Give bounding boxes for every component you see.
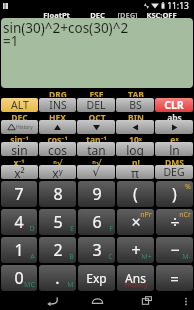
staticText: INS bbox=[49, 98, 67, 112]
button[interactable]: DEG bbox=[155, 165, 193, 179]
button[interactable]: tan bbox=[77, 142, 115, 156]
staticText: Exp bbox=[86, 270, 107, 286]
button[interactable]: History bbox=[1, 120, 38, 134]
staticText: F bbox=[109, 224, 113, 234]
staticText: ⁿ√ bbox=[92, 157, 102, 165]
button[interactable]: 5 bbox=[39, 209, 76, 235]
staticText: 3 bbox=[92, 239, 102, 261]
button[interactable]: x² bbox=[1, 165, 38, 179]
staticText: TAB bbox=[128, 89, 144, 97]
button[interactable]: 7 bbox=[1, 181, 37, 207]
staticText: History bbox=[124, 280, 148, 290]
staticText: log bbox=[126, 142, 144, 156]
button[interactable]: 1 bbox=[1, 237, 37, 263]
button[interactable]: cos bbox=[39, 142, 76, 156]
button[interactable]: Recent apps bbox=[136, 291, 158, 310]
staticText: A bbox=[30, 252, 35, 262]
staticText: M+ bbox=[141, 252, 152, 262]
staticText: M- bbox=[182, 252, 191, 262]
staticText: 2 bbox=[53, 239, 63, 261]
staticText: E bbox=[70, 224, 74, 234]
button[interactable]: INS bbox=[39, 98, 76, 112]
staticText: FloatPt bbox=[43, 10, 70, 18]
button[interactable]: log bbox=[116, 142, 154, 156]
staticText: = bbox=[170, 268, 179, 288]
button[interactable]: ALT bbox=[1, 98, 38, 112]
button[interactable]: Cursor right bbox=[155, 120, 193, 134]
button[interactable]: More options bbox=[179, 294, 193, 308]
staticText: × bbox=[131, 211, 141, 233]
staticText: FSE bbox=[89, 89, 104, 97]
staticText: tan⁻¹ bbox=[86, 134, 107, 142]
button[interactable]: √ bbox=[77, 165, 115, 179]
staticText: − bbox=[170, 239, 180, 261]
button[interactable]: 2 bbox=[39, 237, 76, 263]
staticText: CLR bbox=[164, 98, 184, 112]
staticText: π bbox=[131, 165, 139, 179]
staticText: √ bbox=[92, 165, 100, 179]
staticText: 8 bbox=[53, 183, 63, 205]
staticText: HEX bbox=[49, 112, 66, 120]
staticText: sin⁻¹ bbox=[10, 134, 29, 142]
button[interactable]: 3 bbox=[78, 237, 115, 263]
button[interactable]: 6 bbox=[78, 209, 115, 235]
button[interactable]: 0 bbox=[1, 265, 37, 291]
staticText: 1 bbox=[14, 239, 24, 261]
button[interactable]: = bbox=[156, 265, 193, 291]
button[interactable]: Cursor left bbox=[116, 120, 154, 134]
button[interactable]: + bbox=[117, 237, 154, 263]
button[interactable]: BS bbox=[116, 98, 154, 112]
staticText: cos⁻¹ bbox=[47, 134, 68, 142]
staticText: DEC bbox=[11, 112, 28, 120]
button[interactable]: × bbox=[117, 209, 154, 235]
button[interactable]: . bbox=[39, 265, 76, 291]
button[interactable]: Scroll up bbox=[39, 120, 76, 134]
button[interactable]: π bbox=[116, 165, 154, 179]
button[interactable]: − bbox=[156, 237, 193, 263]
button[interactable]: Exp bbox=[78, 265, 115, 291]
staticText: ⁿ√ bbox=[53, 157, 63, 165]
button[interactable]: 4 bbox=[1, 209, 37, 235]
staticText: DMS bbox=[165, 157, 184, 165]
button[interactable]: ) bbox=[156, 181, 193, 207]
button[interactable]: 9 bbox=[78, 181, 115, 207]
staticText: + bbox=[131, 239, 141, 261]
staticText: % bbox=[185, 182, 191, 192]
staticText: Ans bbox=[125, 270, 146, 286]
staticText: C bbox=[108, 252, 113, 262]
staticText: 0 bbox=[14, 267, 24, 289]
staticText: ( bbox=[133, 183, 138, 205]
staticText: 6 bbox=[92, 211, 102, 233]
staticText: DEG bbox=[163, 165, 185, 179]
staticText: KSC:OFF bbox=[146, 10, 177, 18]
staticText: D bbox=[29, 224, 35, 234]
staticText: MC bbox=[24, 280, 35, 290]
button[interactable]: ln bbox=[155, 142, 193, 156]
staticText: . bbox=[55, 267, 60, 289]
staticText: 4 bbox=[14, 211, 24, 233]
button[interactable]: Ans bbox=[117, 265, 154, 291]
button[interactable]: ÷ bbox=[156, 209, 193, 235]
staticText: nCr bbox=[179, 210, 191, 220]
staticText: eˣ bbox=[170, 134, 179, 142]
button[interactable]: sin bbox=[1, 142, 38, 156]
staticText: xʸ bbox=[52, 165, 63, 179]
staticText: x⁻¹ bbox=[13, 157, 25, 165]
button[interactable]: ( bbox=[117, 181, 154, 207]
staticText: tan bbox=[87, 142, 106, 156]
staticText: [DEG] bbox=[117, 10, 138, 18]
button[interactable]: 8 bbox=[39, 181, 76, 207]
button[interactable]: DEL bbox=[77, 98, 115, 112]
button[interactable]: Scroll down bbox=[77, 120, 115, 134]
staticText: B bbox=[69, 252, 74, 262]
staticText: BS bbox=[129, 98, 142, 112]
staticText: sin(30)^2+cos(30)^2 =1 bbox=[3, 19, 129, 50]
staticText: M bbox=[67, 280, 74, 290]
button[interactable]: xʸ bbox=[39, 165, 76, 179]
button[interactable]: Home bbox=[86, 291, 108, 310]
staticText: ) bbox=[172, 183, 177, 205]
button[interactable]: Back bbox=[41, 291, 63, 310]
staticText: OCT bbox=[88, 112, 106, 120]
staticText: sin bbox=[11, 142, 28, 156]
button[interactable]: CLR bbox=[155, 98, 193, 112]
